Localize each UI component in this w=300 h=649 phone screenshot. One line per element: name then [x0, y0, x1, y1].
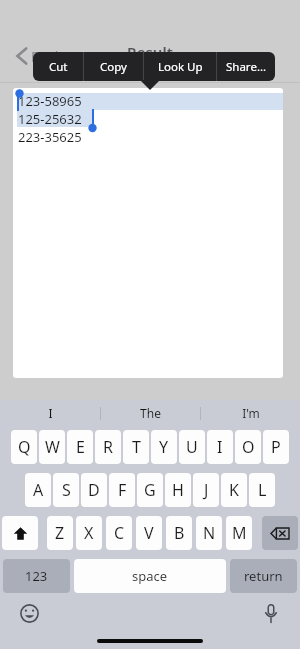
staticText: L — [258, 479, 267, 501]
staticText: Y — [159, 436, 169, 458]
staticText: The — [140, 405, 161, 421]
staticText: S — [62, 479, 71, 501]
button[interactable]: K — [221, 473, 247, 507]
staticText: X — [84, 522, 94, 544]
button[interactable]: F — [109, 473, 135, 507]
staticText: W — [45, 436, 60, 458]
staticText: Cut — [49, 59, 68, 75]
staticText: Z — [55, 522, 65, 544]
button[interactable]: Shift — [2, 516, 38, 550]
staticText: G — [144, 479, 156, 501]
staticText: 123-58965 — [18, 92, 82, 110]
staticText: R — [103, 436, 113, 458]
button[interactable]: space — [74, 559, 226, 593]
button[interactable]: D — [81, 473, 107, 507]
staticText: return — [244, 567, 283, 585]
button[interactable]: L — [249, 473, 275, 507]
button[interactable]: Copy — [84, 52, 143, 81]
button[interactable]: Backspace — [262, 516, 298, 550]
button[interactable]: U — [179, 430, 205, 464]
staticText: J — [204, 479, 209, 501]
button[interactable]: return — [230, 559, 297, 593]
staticText: K — [229, 479, 239, 501]
staticText: Copy — [100, 59, 127, 75]
button[interactable]: P — [263, 430, 289, 464]
button[interactable]: H — [165, 473, 191, 507]
staticText: Back — [31, 47, 63, 66]
button[interactable]: G — [137, 473, 163, 507]
staticText: 223-35625 — [18, 128, 82, 146]
button[interactable]: Z — [47, 516, 73, 550]
button[interactable]: R — [95, 430, 121, 464]
button[interactable]: Q — [11, 430, 37, 464]
button[interactable]: A — [25, 473, 51, 507]
button[interactable]: N — [196, 516, 222, 550]
staticText: Result — [127, 42, 173, 62]
button[interactable]: J — [193, 473, 219, 507]
button[interactable]: V — [136, 516, 162, 550]
button[interactable]: W — [39, 430, 65, 464]
button[interactable]: I — [0, 400, 100, 426]
staticText: U — [186, 436, 198, 458]
button[interactable]: I — [207, 430, 233, 464]
button[interactable]: O — [235, 430, 261, 464]
button[interactable]: E — [67, 430, 93, 464]
staticText: H — [172, 479, 184, 501]
staticText: space — [132, 567, 168, 585]
staticText: I — [217, 436, 223, 458]
button[interactable]: M — [226, 516, 252, 550]
staticText: O — [242, 436, 255, 458]
staticText: B — [174, 522, 185, 544]
staticText: F — [118, 479, 127, 501]
staticText: I — [48, 405, 53, 421]
staticText: M — [232, 522, 247, 544]
button[interactable]: X — [76, 516, 102, 550]
other: Back — [16, 46, 28, 66]
button[interactable]: Emoji — [16, 600, 42, 626]
button[interactable]: Y — [151, 430, 177, 464]
button[interactable]: I'm — [201, 400, 300, 426]
button[interactable]: The — [101, 400, 200, 426]
staticText: C — [114, 522, 125, 544]
staticText: Share... — [226, 59, 267, 75]
button[interactable]: Back — [14, 44, 65, 68]
button[interactable]: Look Up — [144, 52, 216, 81]
button[interactable]: Share... — [217, 52, 275, 81]
staticText: V — [144, 522, 154, 544]
staticText: 125-25632 — [18, 110, 82, 128]
staticText: T — [132, 436, 141, 458]
button[interactable]: B — [166, 516, 192, 550]
staticText: E — [76, 436, 85, 458]
button[interactable]: Dictation — [258, 600, 284, 626]
button[interactable]: T — [123, 430, 149, 464]
button[interactable]: S — [53, 473, 79, 507]
staticText: A — [33, 479, 44, 501]
staticText: I'm — [242, 405, 260, 421]
button[interactable]: C — [106, 516, 132, 550]
staticText: N — [203, 522, 216, 544]
staticText: 123 — [25, 567, 48, 585]
button[interactable]: 123 — [3, 559, 70, 593]
staticText: P — [271, 436, 281, 458]
staticText: Look Up — [158, 59, 203, 75]
staticText: D — [88, 479, 100, 501]
button[interactable]: Cut — [33, 52, 83, 81]
staticText: Q — [18, 436, 31, 458]
